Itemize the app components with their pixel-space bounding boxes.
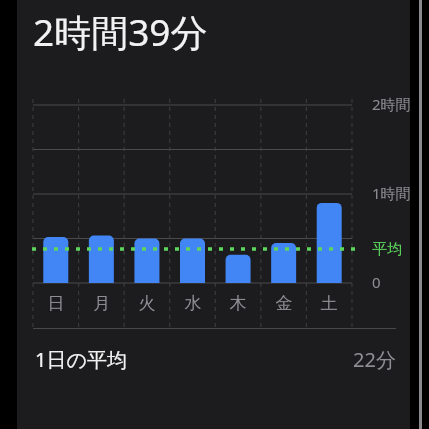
staticText: 木 [215,293,261,314]
staticText: 土 [306,293,352,314]
staticText: 月 [79,293,125,314]
staticText: 日 [33,293,79,314]
staticText: 金 [261,293,307,314]
button[interactable]: 2時間39分 [17,0,410,78]
staticText: 水 [170,293,216,314]
staticText: 火 [124,293,170,314]
staticText: 1日の平均 [35,346,127,373]
staticText: 2時間 [372,94,411,114]
staticText: 2時間39分 [33,6,208,57]
staticText: 0 [372,272,381,292]
button[interactable]: 週間使用時間グラフ [17,78,410,328]
staticText: 1時間 [372,183,411,203]
staticText: 平均 [372,240,402,259]
button[interactable]: 1日の平均 [17,329,410,389]
staticText: 22分 [353,346,396,373]
